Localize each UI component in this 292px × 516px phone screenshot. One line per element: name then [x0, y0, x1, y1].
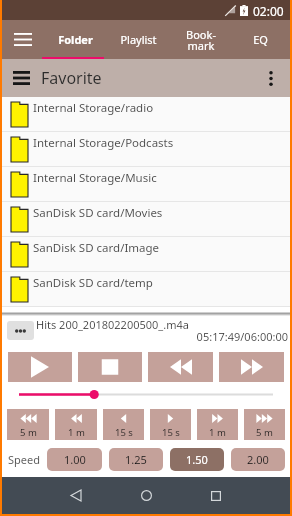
button[interactable]: 5 m — [7, 409, 49, 440]
staticText: 02:00 — [253, 3, 284, 19]
button[interactable]: Rewind — [148, 352, 213, 382]
staticText: 1.00 — [64, 452, 86, 467]
staticText: 5 m — [20, 426, 37, 439]
staticText: Playlist — [120, 32, 157, 47]
staticText: Hits 200_201802200500_.m4a — [36, 317, 189, 332]
staticText: 1 m — [68, 426, 85, 439]
button[interactable]: 5 m — [244, 409, 285, 440]
button[interactable]: Folder — [44, 20, 106, 59]
button[interactable]: Stop — [78, 352, 142, 382]
button[interactable]: 1.25 — [109, 448, 163, 471]
staticText: 15 s — [162, 426, 180, 439]
button[interactable]: Home — [111, 477, 181, 514]
button[interactable]: Back — [41, 477, 111, 514]
button[interactable]: Fast forward — [219, 352, 284, 382]
staticText: 5 m — [256, 426, 273, 439]
button[interactable]: Internal Storage/Music — [2, 167, 290, 201]
button[interactable]: SanDisk SD card/temp — [2, 272, 290, 306]
staticText: Internal Storage/Music — [33, 170, 157, 186]
button[interactable]: Playlist — [106, 20, 171, 59]
button[interactable]: SanDisk SD card/Movies — [2, 202, 290, 236]
staticText: 1.25 — [125, 452, 147, 467]
staticText: 05:17:49/06:00:00 — [2, 329, 288, 344]
staticText: SanDisk SD card/Image — [33, 240, 160, 256]
button[interactable]: 15 s — [103, 409, 144, 440]
button[interactable]: EQ — [231, 20, 290, 59]
button[interactable]: SanDisk SD card/Image — [2, 237, 290, 271]
staticText: Speed — [8, 452, 40, 467]
staticText: Internal Storage/Podcasts — [33, 135, 174, 151]
staticText: 1 m — [209, 426, 226, 439]
button[interactable]: 1.50 — [170, 448, 224, 471]
button[interactable]: More options — [252, 59, 290, 97]
staticText: Internal Storage/radio — [33, 100, 154, 116]
button[interactable]: 15 s — [150, 409, 191, 440]
button[interactable]: Track options — [7, 321, 34, 340]
button[interactable]: Book- mark — [171, 20, 231, 59]
button[interactable]: Internal Storage/radio — [2, 97, 290, 131]
button[interactable]: Recent apps — [181, 477, 251, 514]
button[interactable]: Internal Storage/Podcasts — [2, 132, 290, 166]
button[interactable]: Navigation menu — [2, 20, 44, 59]
staticText: Favorite — [41, 67, 102, 89]
button[interactable]: 1 m — [197, 409, 238, 440]
staticText: 1.50 — [186, 452, 208, 467]
staticText: SanDisk SD card/Movies — [33, 205, 163, 221]
staticText: 15 s — [115, 426, 133, 439]
button[interactable]: 2.00 — [231, 448, 285, 471]
staticText: Folder — [58, 32, 93, 47]
button[interactable]: 1 m — [55, 409, 97, 440]
staticText: Book- mark — [186, 27, 216, 53]
button[interactable]: Play — [8, 352, 72, 382]
staticText: SanDisk SD card/temp — [33, 275, 153, 291]
button[interactable]: 1.00 — [47, 448, 102, 471]
staticText: 2.00 — [247, 452, 269, 467]
staticText: EQ — [253, 32, 268, 47]
